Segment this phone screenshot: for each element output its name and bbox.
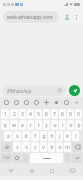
staticText: 2	[13, 111, 16, 118]
button[interactable]: g	[40, 131, 47, 141]
staticText: 7	[53, 111, 56, 118]
button[interactable]: i	[59, 120, 66, 130]
button[interactable]: a	[4, 131, 12, 141]
button[interactable]: Clipboard	[3, 99, 10, 106]
button[interactable]: Shift	[1, 142, 12, 152]
staticText: 9	[69, 111, 72, 118]
button[interactable]: m	[64, 142, 71, 152]
staticText: k	[66, 133, 69, 140]
button[interactable]: Sticker	[13, 99, 20, 106]
button[interactable]: web.whatsapp.com	[3, 11, 59, 23]
staticText: 5	[37, 111, 40, 118]
button[interactable]: 6	[43, 109, 50, 119]
button[interactable]: 0	[75, 109, 82, 119]
staticText: e	[21, 122, 24, 129]
button[interactable]: r	[27, 120, 34, 130]
button[interactable]: Hide keyboard	[68, 166, 77, 175]
button[interactable]: c	[31, 142, 39, 152]
staticText: web.whatsapp.com	[7, 14, 53, 21]
button[interactable]: l	[72, 131, 79, 141]
button[interactable]: GIF	[23, 99, 30, 106]
button[interactable]: Emoji	[33, 99, 40, 106]
staticText: p	[77, 122, 81, 129]
button[interactable]: Recent apps	[47, 166, 56, 175]
staticText: 6	[45, 111, 48, 118]
staticText: x	[25, 144, 28, 151]
staticText: #WhatsApp	[7, 88, 32, 94]
button[interactable]: ,	[22, 153, 29, 163]
button[interactable]: More	[73, 99, 80, 106]
button[interactable]: v	[40, 142, 47, 152]
button[interactable]: 7	[51, 109, 58, 119]
button[interactable]: o	[67, 120, 74, 130]
staticText: j	[59, 133, 61, 140]
button[interactable]: Theme	[63, 99, 70, 106]
button[interactable]: x	[22, 142, 30, 152]
button[interactable]: 9	[67, 109, 74, 119]
button[interactable]: Back	[6, 166, 15, 175]
button[interactable]: #WhatsApp	[3, 85, 66, 96]
button[interactable]: j	[56, 131, 63, 141]
button[interactable]: 1	[1, 109, 9, 119]
staticText: d	[24, 133, 28, 140]
staticText: n	[58, 144, 62, 151]
staticText: 0	[77, 111, 80, 118]
staticText: i	[62, 122, 64, 129]
staticText: ?123	[3, 156, 10, 160]
staticText: c	[34, 144, 37, 151]
button[interactable]: Enter	[72, 153, 82, 163]
button[interactable]: u	[51, 120, 58, 130]
button[interactable]: n	[56, 142, 63, 152]
staticText: r	[29, 122, 32, 129]
button[interactable]: f	[31, 131, 39, 141]
button[interactable]: Backspace	[72, 142, 82, 152]
staticText: t	[38, 122, 40, 129]
button[interactable]: Translate	[43, 99, 50, 106]
staticText: 8	[61, 111, 64, 118]
button[interactable]: Emoji	[13, 153, 21, 163]
button[interactable]: y	[43, 120, 50, 130]
button[interactable]: t	[35, 120, 42, 130]
button[interactable]: w	[10, 120, 18, 130]
button[interactable]: b	[48, 142, 55, 152]
staticText: z	[16, 144, 19, 151]
button[interactable]: e	[19, 120, 26, 130]
staticText: u	[53, 122, 57, 129]
staticText: f	[34, 133, 36, 140]
staticText: a	[7, 133, 10, 140]
button[interactable]: 4	[27, 109, 34, 119]
staticText: ,	[25, 155, 27, 161]
staticText: 3	[21, 111, 24, 118]
button[interactable]: .	[64, 153, 71, 163]
button[interactable]: q	[1, 120, 9, 130]
staticText: y	[45, 122, 48, 129]
button[interactable]: Account	[62, 12, 72, 22]
button[interactable]: d	[22, 131, 30, 141]
button[interactable]: 3	[19, 109, 26, 119]
button[interactable]: 5	[35, 109, 42, 119]
button[interactable]: Settings	[53, 99, 60, 106]
staticText: g	[42, 133, 46, 140]
button[interactable]: Home	[27, 166, 36, 175]
button[interactable]: h	[48, 131, 55, 141]
button[interactable]: z	[13, 142, 21, 152]
button[interactable]: k	[64, 131, 71, 141]
staticText: 4	[29, 111, 32, 118]
staticText: o	[69, 122, 73, 129]
button[interactable]: ?123	[1, 153, 12, 163]
button[interactable]: Send	[69, 85, 80, 96]
button[interactable]: Space	[30, 153, 63, 163]
staticText: s	[16, 133, 19, 140]
button[interactable]: 8	[59, 109, 66, 119]
staticText: m	[65, 144, 70, 151]
staticText: 1	[4, 111, 7, 118]
button[interactable]: p	[75, 120, 82, 130]
staticText: b	[50, 144, 54, 151]
staticText: h	[50, 133, 54, 140]
staticText: .	[67, 155, 69, 161]
button[interactable]: s	[13, 131, 21, 141]
button[interactable]: More options	[72, 13, 80, 21]
button[interactable]: 2	[10, 109, 18, 119]
staticText: w	[12, 122, 16, 129]
staticText: l	[75, 133, 77, 140]
